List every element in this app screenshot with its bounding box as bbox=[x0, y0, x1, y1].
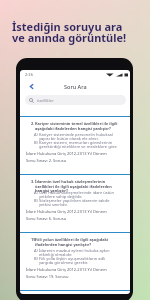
staticText: B) bbox=[34, 256, 38, 261]
staticText: İdarenin mazbut eylemi hukuka aykırı etk… bbox=[39, 248, 130, 258]
staticText: Sözleşmeler yapılırken idarenin takdir y… bbox=[39, 198, 130, 208]
staticText: 19. bbox=[31, 237, 37, 242]
staticText: Kariyer sisteminin temel özellikleri ile… bbox=[35, 121, 130, 131]
staticText: Kariyer sistemi, memurları görevlerinin … bbox=[39, 140, 130, 150]
button[interactable]: özellikler bbox=[25, 95, 126, 105]
staticText: Fiili yolla ilişkin uyuşmazlıkların adli… bbox=[39, 256, 130, 266]
staticText: 3. bbox=[31, 179, 35, 184]
staticText: İstediğin soruyu ara ve anında görüntüle… bbox=[12, 19, 127, 45]
staticText: A) bbox=[34, 132, 38, 137]
button[interactable]: 3. bbox=[20, 174, 130, 232]
staticText: Kariyer sisteminde personelin hukuksal y… bbox=[39, 132, 130, 142]
staticText: İdare Hukukuna Giriş 2012-2013 Yıl Dönem… bbox=[26, 209, 107, 221]
staticText: A) bbox=[34, 248, 38, 253]
button[interactable]: 2. bbox=[20, 116, 130, 174]
staticText: Soru Ara bbox=[64, 83, 87, 90]
staticText: 2:36 bbox=[25, 72, 33, 77]
staticText: özellikler bbox=[37, 98, 54, 103]
staticText: Özel hukuk sözleşmelerinde idare üstün y… bbox=[39, 190, 130, 200]
button[interactable]: Back bbox=[26, 81, 37, 92]
staticText: A) bbox=[34, 190, 38, 195]
staticText: B) bbox=[34, 140, 38, 145]
staticText: İdare Hukukuna Giriş 2012-2013 Yıl Dönem… bbox=[26, 151, 107, 163]
staticText: İdare Hukukuna Giriş 2012-2013 Yıl Dönem… bbox=[26, 267, 107, 279]
button[interactable]: 19. bbox=[20, 232, 130, 290]
staticText: İdarenin özel hukuk sözleşmelerinin özel… bbox=[35, 179, 130, 193]
staticText: 2. bbox=[31, 121, 35, 126]
staticText: B) bbox=[34, 198, 38, 203]
staticText: Fiili yolun özellikleri ile ilgili aşağı… bbox=[35, 237, 130, 247]
